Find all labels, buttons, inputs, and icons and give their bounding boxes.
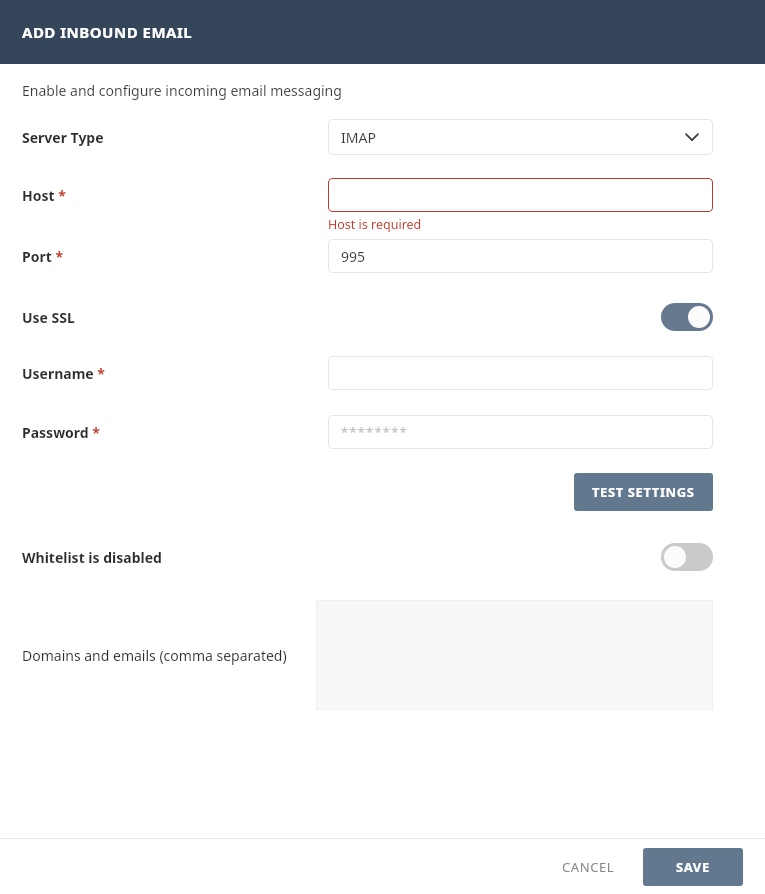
button[interactable]	[328, 356, 713, 390]
staticText: Server Type	[22, 128, 328, 147]
button[interactable]: Whitelist disabled	[661, 543, 713, 571]
button[interactable]: TEST SETTINGS	[574, 473, 713, 511]
staticText: Domains and emails (comma separated)	[22, 646, 316, 665]
staticText: Enable and configure incoming email mess…	[22, 81, 342, 100]
staticText: Host *	[22, 186, 328, 205]
staticText: IMAP	[341, 128, 376, 147]
staticText: ********	[341, 423, 408, 441]
button[interactable]: Server Type dropdown	[328, 119, 713, 155]
staticText: ADD INBOUND EMAIL	[22, 22, 193, 42]
staticText: Username *	[22, 364, 328, 383]
button[interactable]: Use SSL enabled	[661, 303, 713, 331]
button[interactable]: SAVE	[643, 848, 743, 886]
staticText: CANCEL	[562, 858, 615, 876]
staticText: Port *	[22, 247, 328, 266]
button[interactable]: 995	[328, 239, 713, 273]
button[interactable]: ********	[328, 415, 713, 449]
staticText: Host is required	[328, 216, 422, 233]
button[interactable]: CANCEL	[544, 848, 633, 886]
staticText: TEST SETTINGS	[592, 483, 695, 501]
button[interactable]	[328, 178, 713, 212]
staticText: Use SSL	[22, 308, 328, 327]
staticText: Password *	[22, 423, 328, 442]
staticText: SAVE	[676, 858, 710, 876]
staticText: 995	[341, 247, 366, 266]
staticText: Whitelist is disabled	[22, 548, 328, 567]
